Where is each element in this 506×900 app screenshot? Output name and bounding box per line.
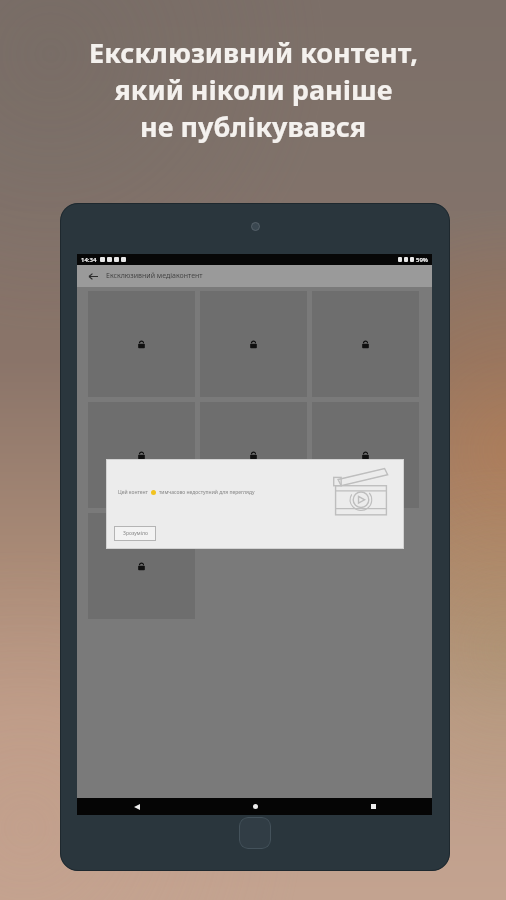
button[interactable]: [312, 402, 419, 508]
staticText: який ніколи раніше: [114, 71, 393, 108]
button[interactable]: Home: [239, 817, 271, 849]
button[interactable]: Back: [77, 798, 196, 815]
staticText: 59%: [416, 256, 428, 264]
button[interactable]: Recents: [314, 798, 432, 815]
button[interactable]: Back: [85, 268, 101, 284]
button[interactable]: [88, 291, 195, 397]
button[interactable]: [88, 402, 195, 508]
staticText: 14:34: [81, 256, 97, 264]
button[interactable]: [88, 513, 195, 619]
staticText: Ексклюзивний контент,: [89, 34, 418, 71]
staticText: Цей контент: [118, 489, 148, 496]
staticText: Ексклюзивний медіаконтент: [106, 271, 203, 281]
button[interactable]: Home: [196, 798, 314, 815]
button[interactable]: [312, 291, 419, 397]
button[interactable]: [200, 402, 307, 508]
staticText: Зрозуміло: [123, 530, 148, 537]
staticText: тимчасово недоступний для перегляду: [159, 489, 255, 496]
button[interactable]: Зрозуміло: [114, 526, 156, 541]
staticText: не публікувався: [140, 108, 366, 145]
button[interactable]: [200, 291, 307, 397]
